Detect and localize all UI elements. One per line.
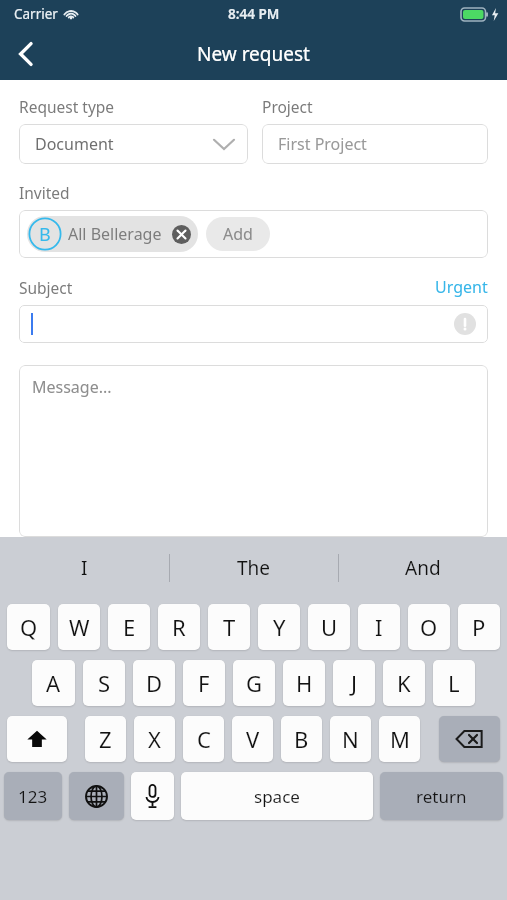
button[interactable]: L [433,660,475,706]
staticText: P [472,612,486,642]
staticText: U [321,612,338,642]
staticText: R [172,612,186,642]
button[interactable]: Q [7,604,50,650]
staticText: Y [273,612,286,642]
staticText: N [342,724,359,754]
button[interactable]: S [83,660,125,706]
button[interactable]: Urgent [435,276,488,298]
staticText: C [197,724,211,754]
staticText: G [246,668,263,698]
button[interactable]: V [232,716,273,762]
button[interactable]: E [108,604,150,650]
staticText: K [397,668,411,698]
button[interactable]: Message... [19,365,488,537]
button[interactable]: Backspace [439,716,500,762]
staticText: Carrier [14,5,58,23]
button[interactable]: C [183,716,224,762]
staticText: Invited [19,182,70,203]
other: Remove All Bellerage [168,221,194,247]
button[interactable]: G [233,660,275,706]
staticText: A [46,668,61,698]
staticText: Z [99,724,112,754]
staticText: H [296,668,313,698]
staticText: L [448,668,460,698]
button[interactable]: I [358,604,400,650]
button[interactable]: M [379,716,420,762]
button[interactable]: Change keyboard language [69,772,124,820]
button[interactable]: U [308,604,350,650]
button[interactable]: The [170,537,338,599]
staticText: M [390,724,410,754]
staticText: Q [20,612,38,642]
staticText: W [69,612,90,642]
button[interactable]: P [458,604,500,650]
staticText: S [98,668,111,698]
button[interactable]: X [134,716,175,762]
button[interactable]: Shift [7,716,67,762]
staticText: 123 [18,785,48,808]
button[interactable]: B [281,716,322,762]
button[interactable]: Y [258,604,300,650]
button[interactable]: F [183,660,225,706]
button[interactable]: J [333,660,375,706]
button[interactable]: O [408,604,450,650]
staticText: First Project [278,133,367,155]
staticText: O [420,612,438,642]
staticText: E [123,612,136,642]
staticText: Project [262,96,313,117]
staticText: space [254,785,300,808]
button[interactable]: Z [85,716,126,762]
button[interactable]: W [58,604,100,650]
button[interactable]: A [32,660,75,706]
staticText: F [198,668,210,698]
button[interactable]: N [330,716,371,762]
button[interactable]: B [27,216,198,252]
staticText: B [39,222,51,247]
staticText: Add [223,223,253,245]
staticText: V [246,724,260,754]
button[interactable]: I [0,537,169,599]
button[interactable]: space [181,772,373,820]
staticText: Request type [19,96,115,117]
staticText: I [81,555,88,581]
button[interactable]: H [283,660,325,706]
button[interactable]: 123 [4,772,62,820]
staticText: J [351,668,358,698]
button[interactable]: T [208,604,250,650]
staticText: All Bellerage [68,223,162,245]
button[interactable]: D [133,660,175,706]
staticText: D [146,668,163,698]
button[interactable]: And [339,537,507,599]
button[interactable]: First Project [262,124,488,164]
button[interactable]: return [380,772,503,820]
staticText: The [237,555,271,581]
button[interactable]: K [383,660,425,706]
button[interactable]: R [158,604,200,650]
staticText: 8:44 PM [228,5,280,23]
staticText: B [294,724,309,754]
staticText: Subject [19,277,73,298]
button[interactable] [19,305,488,343]
staticText: And [405,555,441,581]
staticText: Message... [32,376,112,398]
staticText: I [375,612,383,642]
staticText: Document [35,133,114,155]
staticText: return [416,785,467,808]
button[interactable]: Dictate [131,772,174,820]
staticText: X [148,724,161,754]
staticText: New request [197,41,310,67]
staticText: T [223,612,236,642]
button[interactable]: Document [19,124,248,164]
button[interactable]: Back [0,28,52,80]
staticText: Urgent [435,276,488,298]
button[interactable]: Add [206,217,270,251]
